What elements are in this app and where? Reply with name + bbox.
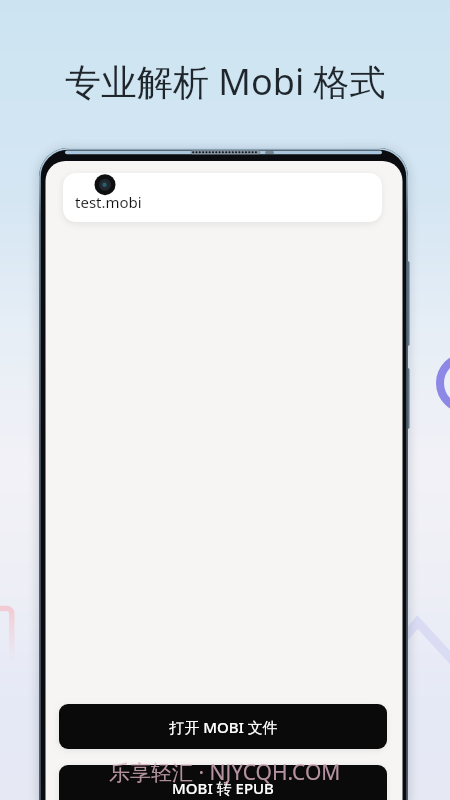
staticText: test.mobi [75,192,142,212]
staticText: MOBI 转 EPUB [172,778,274,798]
staticText: 专业解析 Mobi 格式 [65,57,386,106]
staticText: 打开 MOBI 文件 [169,717,278,737]
button[interactable]: MOBI 转 EPUB [59,765,387,800]
staticText: 乐享轻汇 · NJYCQH.COM [109,758,341,787]
button[interactable]: test.mobi [63,173,382,222]
button[interactable]: 打开 MOBI 文件 [59,704,387,749]
